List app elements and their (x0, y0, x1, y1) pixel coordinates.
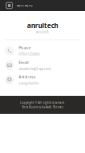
staticText: anruitech (27, 21, 58, 30)
staticText: Main Menu (17, 4, 33, 7)
button[interactable]: Email (0, 58, 85, 73)
staticText: Address (18, 74, 35, 79)
button[interactable]: Address (0, 73, 85, 87)
button[interactable]: Phone (0, 44, 85, 58)
staticText: Best Business by Axle Themes (22, 105, 63, 109)
staticText: Copyright © All rights reserved. (20, 101, 65, 104)
staticText: 0769-123456 (18, 51, 39, 57)
button[interactable]: Open main menu (6, 2, 12, 9)
staticText: Email (18, 60, 28, 65)
staticText: anruitech (36, 30, 49, 34)
staticText: anuitechq@qq.com (18, 66, 51, 71)
staticText: Phone (18, 45, 30, 50)
staticText: songzhanlik (18, 80, 38, 86)
